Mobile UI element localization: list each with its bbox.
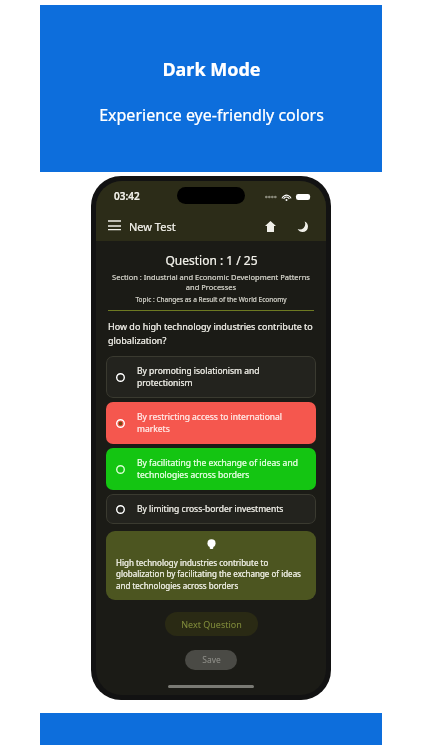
- staticText: Topic : Changes as a Result of the World…: [106, 295, 316, 304]
- button[interactable]: By restricting access to international m…: [106, 402, 316, 444]
- staticText: Next Question: [181, 618, 242, 630]
- staticText: Save: [202, 654, 221, 666]
- staticText: By restricting access to international m…: [137, 411, 306, 435]
- button[interactable]: By facilitating the exchange of ideas an…: [106, 448, 316, 490]
- button[interactable]: Save: [185, 650, 237, 670]
- staticText: By facilitating the exchange of ideas an…: [137, 457, 306, 481]
- button[interactable]: Home: [260, 216, 280, 236]
- staticText: Dark Mode: [162, 57, 261, 82]
- button[interactable]: By limiting cross-border investments: [106, 494, 316, 524]
- staticText: 03:42: [114, 189, 140, 203]
- staticText: Section : Industrial and Economic Develo…: [106, 272, 316, 292]
- button[interactable]: By promoting isolationism and protection…: [106, 356, 316, 398]
- staticText: Question : 1 / 25: [165, 252, 258, 268]
- button[interactable]: Toggle dark mode: [292, 216, 312, 236]
- staticText: Experience eye-friendly colors: [99, 104, 324, 126]
- button[interactable]: Next Question: [165, 612, 258, 636]
- button[interactable]: Menu: [103, 215, 125, 237]
- staticText: High technology industries contribute to…: [116, 557, 306, 592]
- staticText: New Test: [129, 219, 176, 234]
- staticText: By promoting isolationism and protection…: [137, 365, 306, 389]
- staticText: How do high technology industries contri…: [108, 320, 314, 347]
- staticText: By limiting cross-border investments: [137, 503, 306, 515]
